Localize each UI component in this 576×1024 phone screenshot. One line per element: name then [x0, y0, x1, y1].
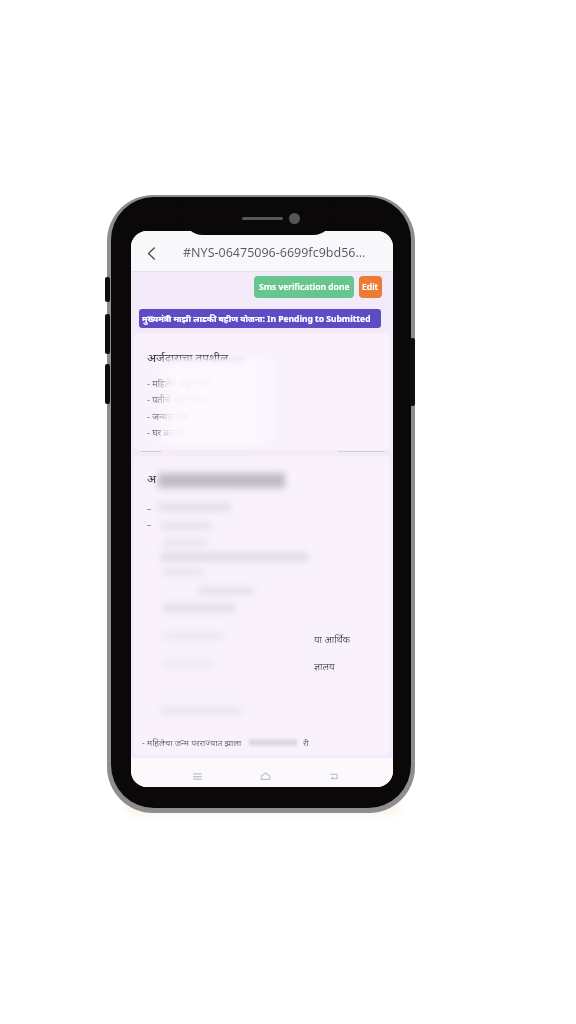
staticText: अ [147, 471, 157, 487]
button[interactable]: Home [257, 768, 273, 784]
staticText: मुख्यमंत्री माझी लाडकी बहीण योजना: In Pe… [142, 313, 371, 325]
button[interactable]: Back [325, 768, 341, 784]
staticText: - जन्मतारीख [147, 410, 188, 422]
staticText: - घर क्रमांक [147, 426, 186, 438]
staticText: अर्जदाराचा तपशील [147, 350, 229, 366]
staticText: ज्ञालय [314, 660, 335, 673]
staticText: - महिलेचे संपूर्ण नाव [147, 377, 212, 389]
staticText: री [303, 737, 309, 749]
staticText: - पतीचे संपूर्ण नाव [147, 393, 206, 405]
button[interactable]: Back [140, 242, 162, 264]
button[interactable]: Sms verification done [254, 276, 354, 298]
staticText: #NYS-06475096-6699fc9bd56… [183, 244, 366, 261]
staticText: Edit [362, 281, 379, 293]
staticText: - महिलेचा जन्म परराज्यात झाला [142, 737, 242, 749]
button[interactable]: Recent apps [189, 768, 205, 784]
staticText: Sms verification done [259, 281, 350, 293]
staticText: या आर्थिक [314, 633, 350, 646]
button[interactable]: मुख्यमंत्री माझी लाडकी बहीण योजना: In Pe… [139, 309, 381, 328]
button[interactable]: Edit [359, 276, 382, 298]
